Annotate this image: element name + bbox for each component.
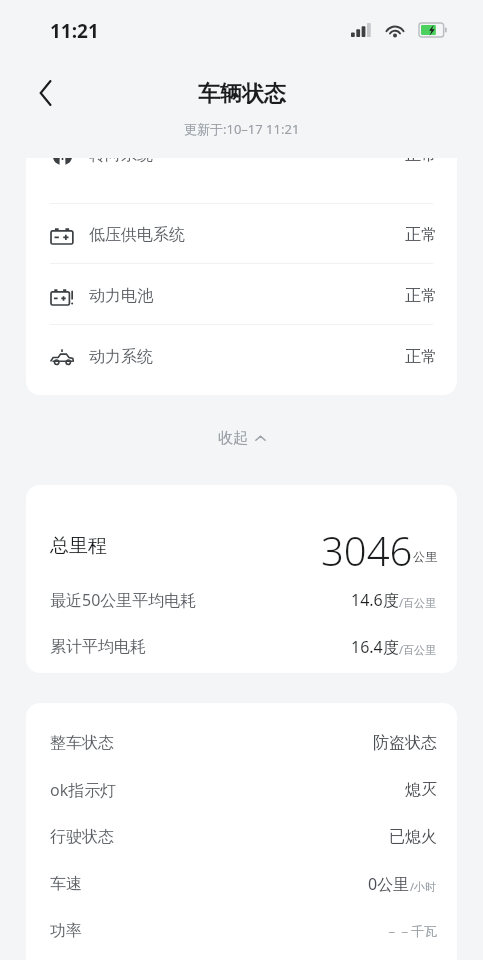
staticText: 行驶状态 xyxy=(50,827,114,847)
button[interactable]: Back xyxy=(24,71,68,115)
staticText: /小时 xyxy=(410,879,437,894)
staticText: 动力电池 xyxy=(89,286,153,306)
staticText: /百公里 xyxy=(399,642,437,657)
staticText: 正常 xyxy=(405,225,437,245)
staticText: 功率 xyxy=(50,921,82,941)
staticText: 已熄火 xyxy=(389,827,437,847)
staticText: 整车状态 xyxy=(50,733,114,753)
staticText: 熄灭 xyxy=(405,780,437,800)
button[interactable]: 动力电池 xyxy=(26,268,457,324)
staticText: 更新于:10–17 11:21 xyxy=(184,120,300,138)
staticText: 14.6度 xyxy=(351,589,399,611)
staticText: 动力系统 xyxy=(89,347,153,367)
button[interactable]: 转向系统 xyxy=(26,158,457,183)
staticText: 正常 xyxy=(405,286,437,306)
staticText: 0公里 xyxy=(368,873,410,895)
button[interactable]: 收起 xyxy=(0,418,483,458)
staticText: 正常 xyxy=(405,347,437,367)
staticText: 累计平均电耗 xyxy=(50,637,146,657)
staticText: /百公里 xyxy=(399,595,437,610)
staticText: 16.4度 xyxy=(351,636,399,658)
staticText: －－千瓦 xyxy=(385,923,437,939)
staticText: 车速 xyxy=(50,874,82,894)
staticText: 公里 xyxy=(413,549,437,564)
button[interactable]: 低压供电系统 xyxy=(26,207,457,263)
staticText: 车辆状态 xyxy=(198,80,286,108)
staticText: 最近50公里平均电耗 xyxy=(50,589,197,611)
staticText: 防盗状态 xyxy=(373,733,437,753)
staticText: 低压供电系统 xyxy=(89,225,185,245)
button[interactable]: 动力系统 xyxy=(26,329,457,385)
staticText: 正常 xyxy=(405,158,437,165)
staticText: 收起 xyxy=(218,429,248,448)
staticText: 3046 xyxy=(321,523,413,569)
staticText: 总里程 xyxy=(50,534,107,558)
staticText: ok指示灯 xyxy=(50,779,117,801)
staticText: 11:21 xyxy=(50,18,99,44)
staticText: 转向系统 xyxy=(89,158,153,165)
